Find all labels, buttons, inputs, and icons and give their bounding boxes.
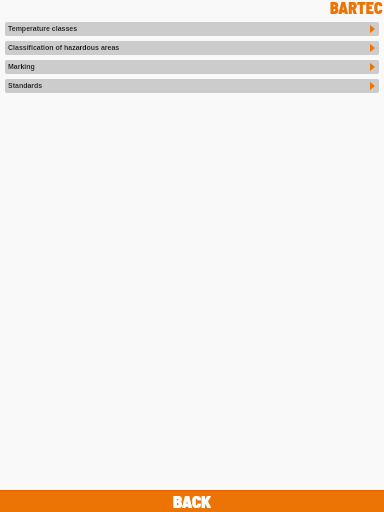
other: Open Marking bbox=[370, 63, 375, 71]
button[interactable]: Temperature classes bbox=[5, 22, 379, 36]
staticText: Marking bbox=[8, 63, 35, 71]
staticText: BARTEC bbox=[330, 0, 383, 14]
staticText: Classification of hazardous areas bbox=[8, 44, 120, 52]
button[interactable]: Marking bbox=[5, 60, 379, 74]
staticText: Temperature classes bbox=[8, 25, 78, 33]
other: Open Temperature classes bbox=[370, 25, 375, 33]
staticText: BACK bbox=[173, 491, 211, 511]
staticText: Standards bbox=[8, 82, 43, 90]
button[interactable]: Standards bbox=[5, 79, 379, 93]
other: Open Classification of hazardous areas bbox=[370, 44, 375, 52]
button[interactable]: Classification of hazardous areas bbox=[5, 41, 379, 55]
other: Open Standards bbox=[370, 82, 375, 90]
button[interactable]: BACK bbox=[0, 490, 384, 512]
